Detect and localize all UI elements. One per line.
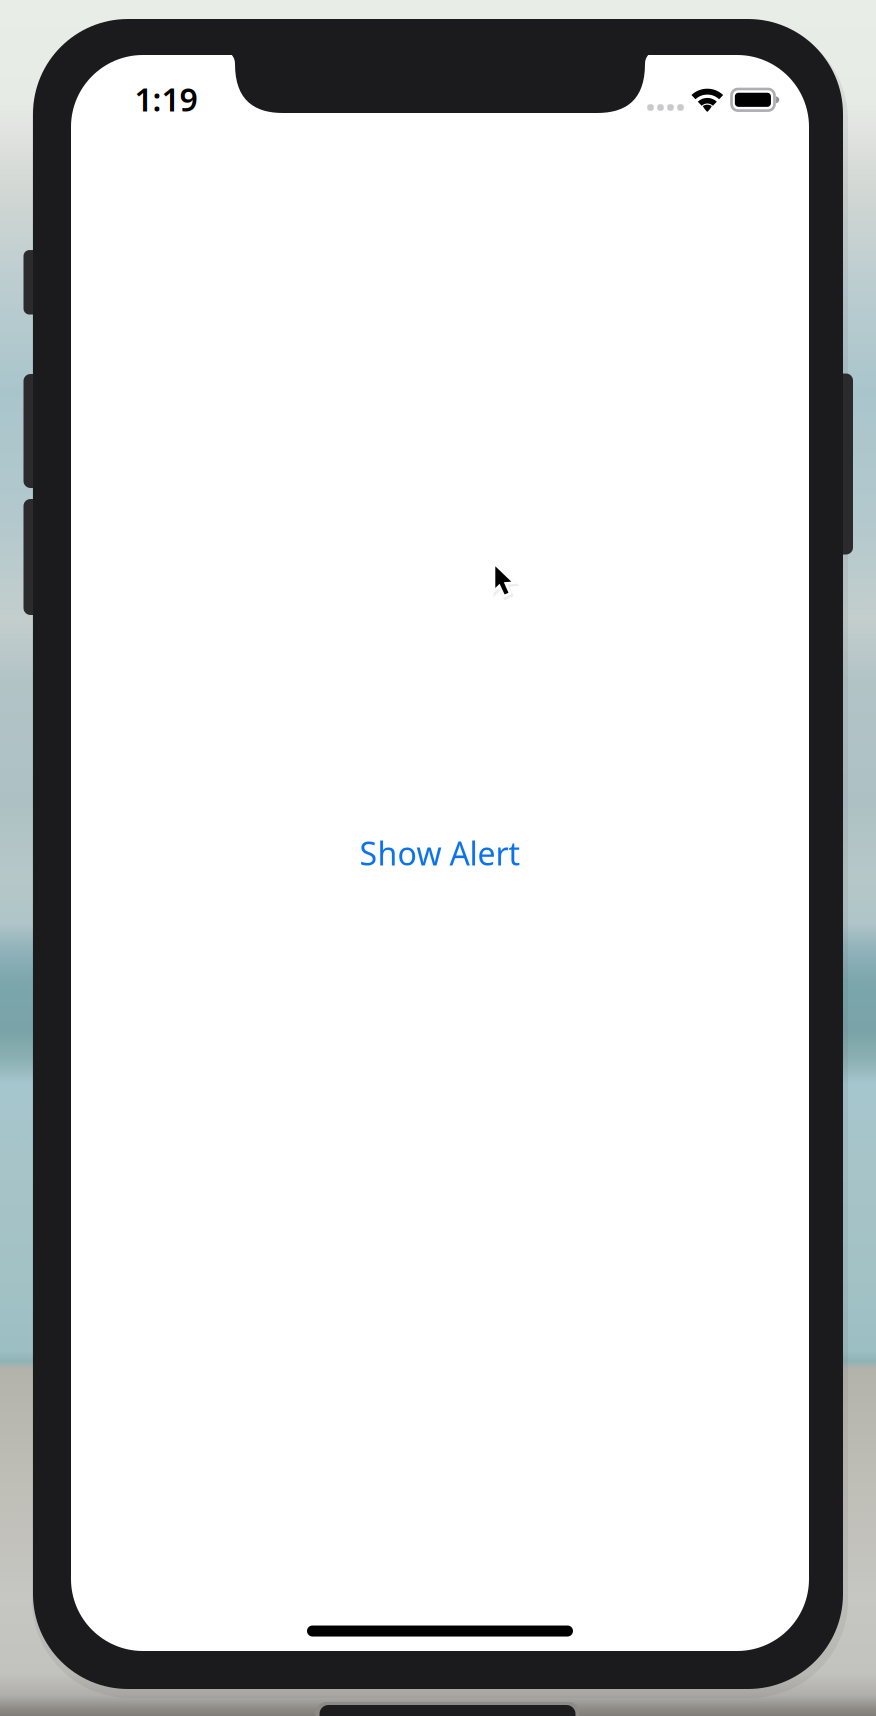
staticText: 1:19 bbox=[134, 78, 197, 120]
staticText: Show Alert bbox=[359, 832, 520, 874]
button[interactable]: Show Alert bbox=[359, 832, 520, 874]
